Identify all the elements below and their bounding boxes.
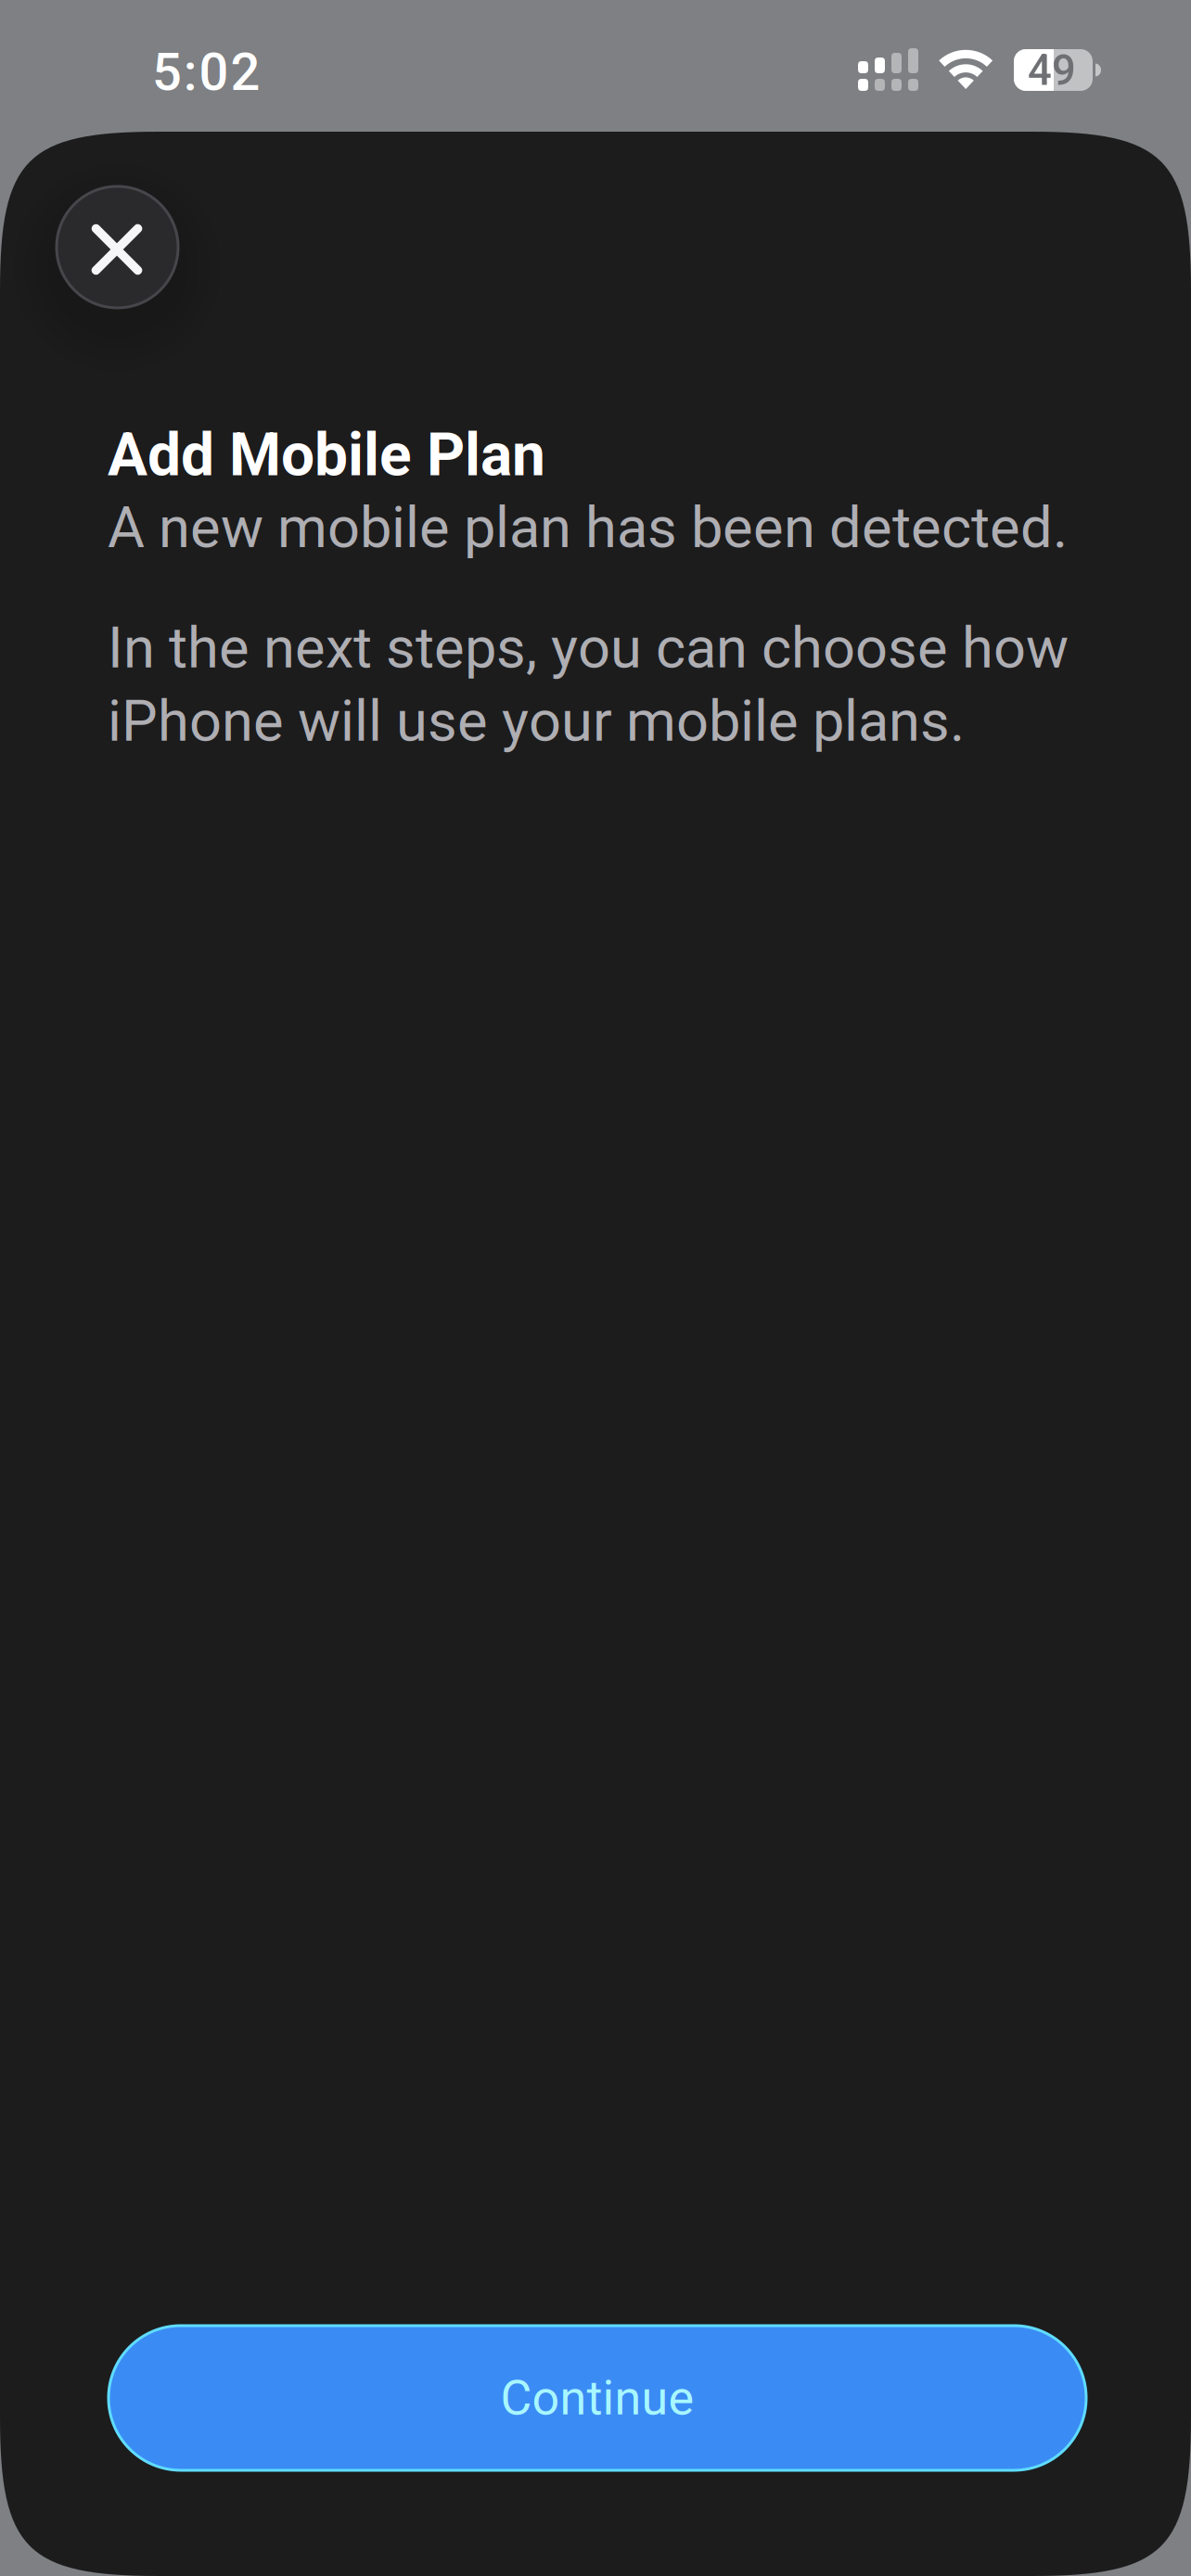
button[interactable]: Close xyxy=(57,186,178,308)
staticText: 5:02 xyxy=(152,42,260,103)
staticText: 49 xyxy=(1028,46,1076,95)
staticText: Continue xyxy=(500,2370,694,2426)
staticText: A new mobile plan has been detected. xyxy=(108,494,1068,561)
staticText: Add Mobile Plan xyxy=(108,420,545,490)
staticText: In the next steps, you can choose how iP… xyxy=(108,615,1069,754)
button[interactable]: Continue xyxy=(109,2326,1086,2470)
